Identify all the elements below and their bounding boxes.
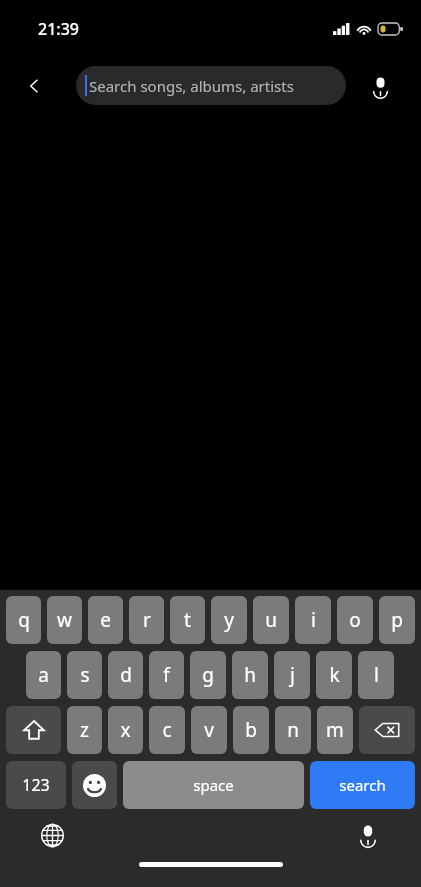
staticText: q (18, 607, 30, 633)
staticText: n (287, 717, 299, 743)
staticText: z (80, 717, 89, 743)
staticText: b (245, 717, 257, 743)
button[interactable]: g (190, 651, 226, 699)
staticText: p (391, 607, 403, 633)
staticText: t (184, 607, 191, 633)
staticText: u (265, 607, 277, 633)
button[interactable]: j (274, 651, 310, 699)
button[interactable]: Emoji (72, 761, 117, 809)
button[interactable]: Voice input (348, 815, 388, 855)
staticText: Search songs, albums, artists (89, 76, 294, 96)
button[interactable]: m (317, 706, 353, 754)
staticText: o (349, 607, 361, 633)
button[interactable]: Back (13, 65, 55, 107)
staticText: k (329, 662, 340, 688)
button[interactable]: b (233, 706, 269, 754)
staticText: v (204, 717, 214, 743)
button[interactable]: i (295, 596, 331, 644)
staticText: g (202, 662, 214, 688)
staticText: m (326, 717, 344, 743)
button[interactable]: q (6, 596, 41, 644)
button[interactable]: a (26, 651, 61, 699)
staticText: j (290, 662, 295, 688)
button[interactable]: p (379, 596, 415, 644)
staticText: r (143, 607, 151, 633)
staticText: f (163, 662, 170, 688)
staticText: c (162, 717, 172, 743)
button[interactable]: y (211, 596, 247, 644)
staticText: 21:39 (38, 18, 79, 40)
button[interactable]: d (108, 651, 143, 699)
staticText: l (374, 662, 379, 688)
button[interactable]: h (232, 651, 268, 699)
button[interactable]: Voice search (360, 66, 400, 106)
button[interactable]: s (67, 651, 102, 699)
staticText: space (193, 775, 234, 795)
button[interactable]: o (337, 596, 373, 644)
button[interactable]: v (191, 706, 227, 754)
button[interactable]: 123 (6, 761, 66, 809)
button[interactable]: t (170, 596, 205, 644)
staticText: e (100, 607, 111, 633)
staticText: 123 (22, 774, 50, 796)
staticText: s (80, 662, 90, 688)
button[interactable]: f (149, 651, 184, 699)
button[interactable]: w (47, 596, 82, 644)
button[interactable]: r (129, 596, 164, 644)
button[interactable]: x (108, 706, 143, 754)
button[interactable]: Change language (32, 815, 72, 855)
button[interactable]: k (316, 651, 352, 699)
button[interactable]: z (67, 706, 102, 754)
button[interactable]: search (310, 761, 415, 809)
button[interactable]: Shift (6, 706, 61, 754)
staticText: y (224, 607, 234, 633)
button[interactable]: u (253, 596, 289, 644)
button[interactable]: space (123, 761, 304, 809)
button[interactable]: n (275, 706, 311, 754)
staticText: i (311, 607, 316, 633)
button[interactable]: c (149, 706, 185, 754)
button[interactable]: l (358, 651, 394, 699)
staticText: x (120, 717, 131, 743)
button[interactable]: Search songs, albums, artists (76, 66, 346, 105)
staticText: w (57, 607, 72, 633)
staticText: h (244, 662, 256, 688)
button[interactable]: Backspace (359, 706, 415, 754)
staticText: search (339, 775, 386, 795)
staticText: d (120, 662, 132, 688)
staticText: a (38, 662, 49, 688)
button[interactable]: e (88, 596, 123, 644)
